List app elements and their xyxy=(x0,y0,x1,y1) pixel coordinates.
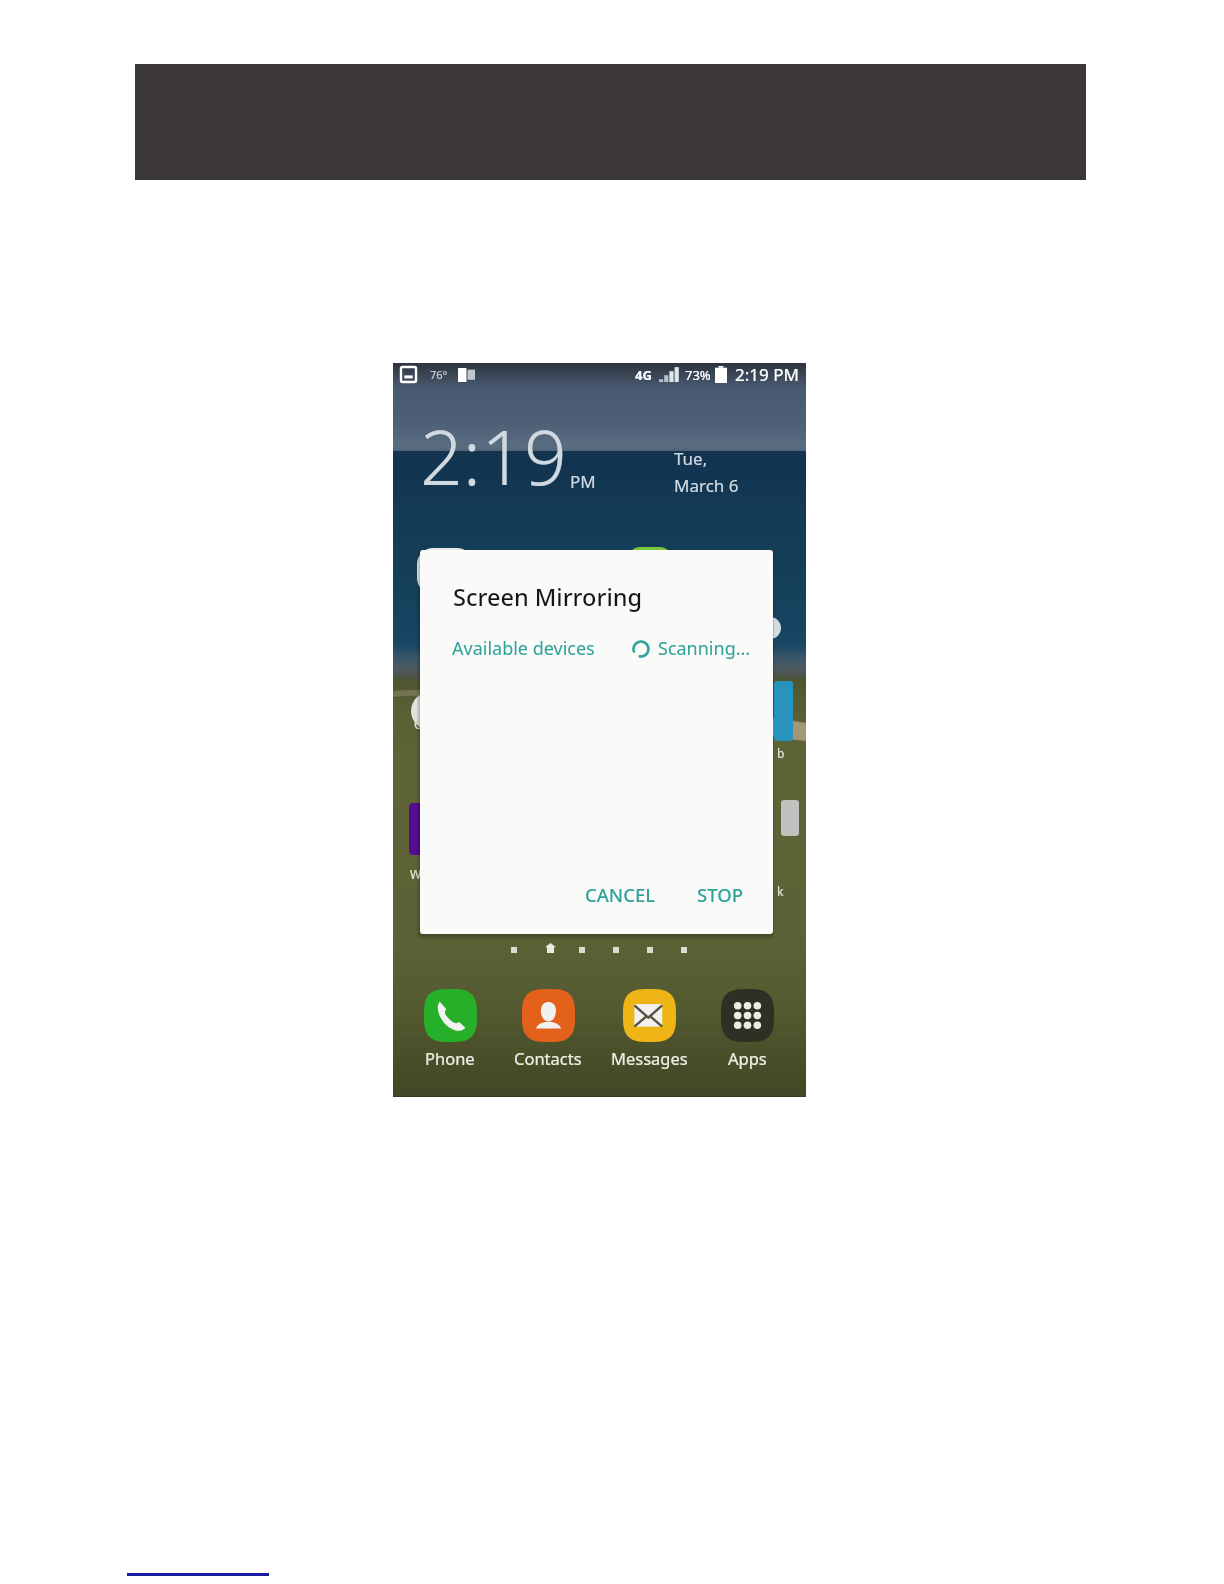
staticText: 4G xyxy=(635,366,652,384)
button[interactable]: Phone xyxy=(400,989,500,1069)
button[interactable]: Contacts xyxy=(498,989,598,1069)
staticText: PM xyxy=(570,470,596,493)
staticText: Contacts xyxy=(514,1047,582,1069)
staticText: Messages xyxy=(611,1047,688,1069)
staticText: March 6 xyxy=(674,474,739,497)
staticText: STOP xyxy=(697,882,743,907)
staticText: b xyxy=(777,745,785,761)
staticText: 76° xyxy=(430,367,448,382)
staticText: Phone xyxy=(425,1047,475,1069)
button[interactable]: Apps xyxy=(697,989,797,1069)
staticText: 2:19 PM xyxy=(735,363,799,386)
button[interactable]: STOP xyxy=(679,868,761,921)
staticText: Tue, xyxy=(674,447,708,470)
staticText: CANCEL xyxy=(585,882,656,907)
staticText: k xyxy=(777,883,784,899)
staticText: C xyxy=(414,716,422,732)
staticText: 73% xyxy=(685,366,711,384)
staticText: Screen Mirroring xyxy=(453,581,643,613)
staticText: W xyxy=(410,866,422,882)
button[interactable]: Messages xyxy=(599,989,699,1069)
staticText: 2:19 xyxy=(420,405,567,507)
staticText: Apps xyxy=(728,1047,767,1069)
staticText: Available devices xyxy=(452,636,595,661)
staticText: Scanning... xyxy=(658,636,751,661)
button[interactable]: CANCEL xyxy=(567,868,674,921)
